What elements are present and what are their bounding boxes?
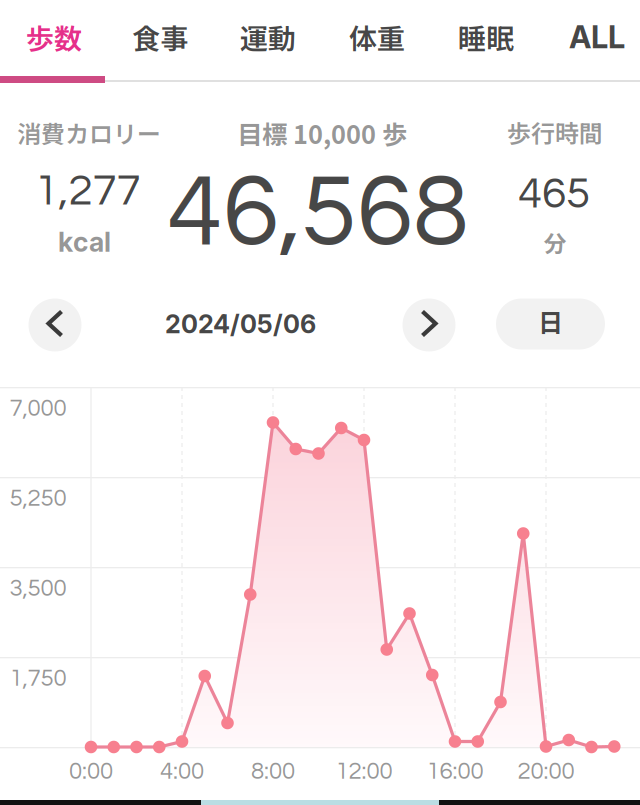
staticText: 46,568 xyxy=(167,161,469,265)
button[interactable]: Next day xyxy=(402,298,455,351)
staticText: 7,000 xyxy=(9,396,66,421)
staticText: 消費カロリー xyxy=(17,115,161,150)
staticText: 1,750 xyxy=(9,666,66,691)
staticText: kcal xyxy=(58,226,111,258)
button[interactable]: ALL xyxy=(547,0,640,76)
button[interactable]: 睡眠 xyxy=(431,0,540,76)
staticText: 12:00 xyxy=(335,759,392,784)
staticText: 2024/05/06 xyxy=(165,309,316,339)
staticText: 3,500 xyxy=(9,576,66,601)
staticText: 目標 10,000 歩 xyxy=(237,115,407,151)
staticText: 日 xyxy=(538,303,563,339)
staticText: 465 xyxy=(518,171,590,217)
staticText: 0:00 xyxy=(69,759,113,784)
button[interactable]: 歩数 xyxy=(0,0,107,76)
button[interactable]: 2024/05/06 xyxy=(135,297,345,351)
staticText: 16:00 xyxy=(426,759,483,784)
staticText: 5,250 xyxy=(9,486,66,511)
button[interactable]: Previous day xyxy=(28,298,81,351)
button[interactable]: 運動 xyxy=(214,0,322,76)
staticText: 歩行時間 xyxy=(507,115,603,149)
staticText: 体重 xyxy=(349,17,405,57)
button[interactable]: 日 xyxy=(496,298,605,349)
button[interactable]: 体重 xyxy=(322,0,431,76)
staticText: ALL xyxy=(569,18,625,55)
staticText: 睡眠 xyxy=(458,17,514,57)
staticText: 運動 xyxy=(240,17,296,57)
staticText: 分 xyxy=(543,226,566,258)
staticText: 4:00 xyxy=(160,759,204,784)
staticText: 食事 xyxy=(132,17,188,57)
staticText: 1,277 xyxy=(34,168,140,214)
staticText: 歩数 xyxy=(26,17,82,57)
staticText: 8:00 xyxy=(251,759,295,784)
button[interactable]: 食事 xyxy=(106,0,213,76)
staticText: 20:00 xyxy=(517,759,574,784)
